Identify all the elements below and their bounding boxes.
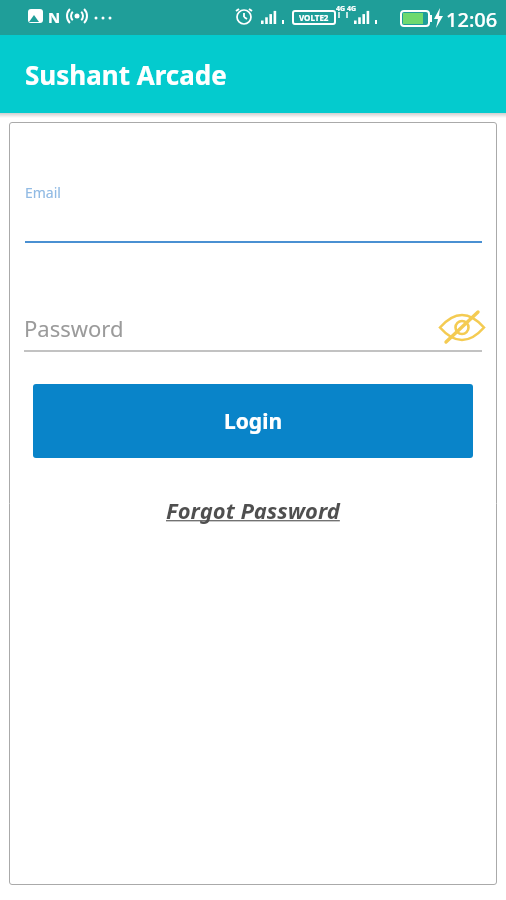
button[interactable]: Login bbox=[33, 384, 473, 458]
button[interactable] bbox=[438, 313, 486, 342]
staticText: Sushant Arcade bbox=[25, 57, 227, 92]
button[interactable] bbox=[24, 173, 482, 243]
button[interactable]: Forgot Password bbox=[166, 495, 340, 525]
staticText: Email bbox=[25, 183, 61, 202]
staticText: Login bbox=[224, 407, 283, 436]
staticText: VOLTE2 bbox=[299, 12, 329, 23]
staticText: Password bbox=[24, 313, 124, 343]
staticText: N bbox=[48, 7, 61, 27]
staticText: 12:06 bbox=[446, 6, 498, 33]
button[interactable] bbox=[24, 295, 482, 352]
staticText: 4G 4G bbox=[336, 4, 356, 14]
